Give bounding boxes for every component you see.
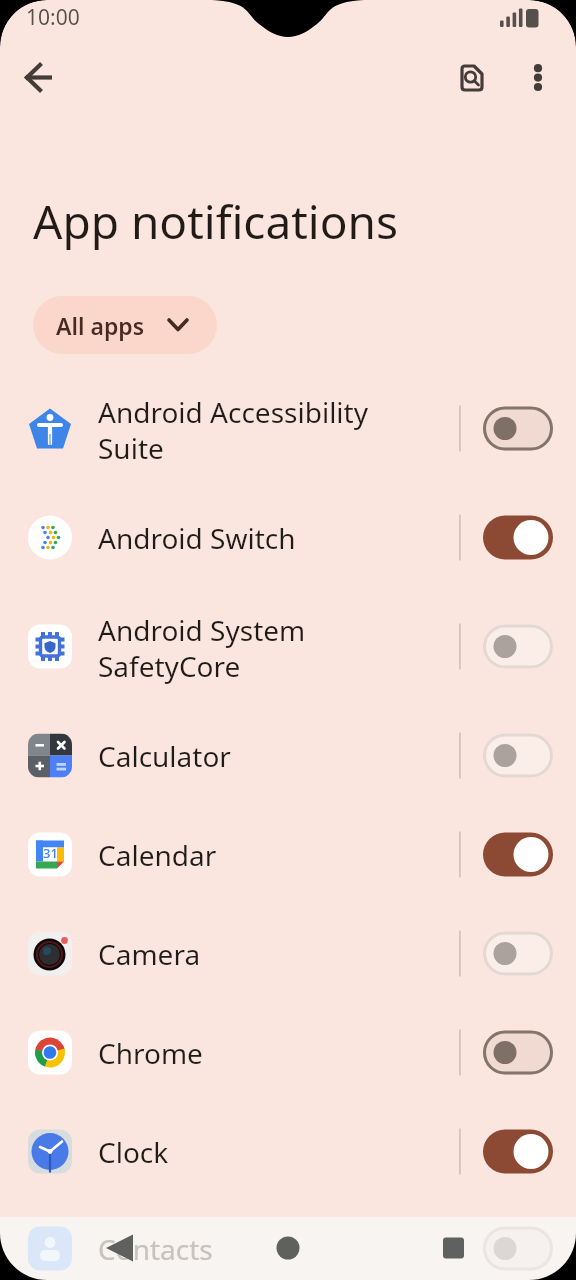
staticText: Android System xyxy=(98,611,306,649)
staticText: All apps xyxy=(56,310,145,341)
staticText: Calendar xyxy=(98,836,217,874)
staticText: Chrome xyxy=(98,1034,203,1072)
staticText: Calculator xyxy=(98,737,231,775)
staticText: Clock xyxy=(98,1133,169,1171)
staticText: 31 xyxy=(43,844,58,862)
staticText: Contacts xyxy=(98,1232,213,1270)
staticText: Android Accessibility xyxy=(98,393,368,431)
staticText: Contacts xyxy=(98,1230,213,1268)
staticText: SafetyCore xyxy=(98,647,241,685)
staticText: App notifications xyxy=(33,190,399,253)
staticText: Suite xyxy=(98,429,164,467)
staticText: Camera xyxy=(98,935,201,973)
staticText: Android Switch xyxy=(98,519,296,557)
staticText: 10:00 xyxy=(26,3,80,32)
